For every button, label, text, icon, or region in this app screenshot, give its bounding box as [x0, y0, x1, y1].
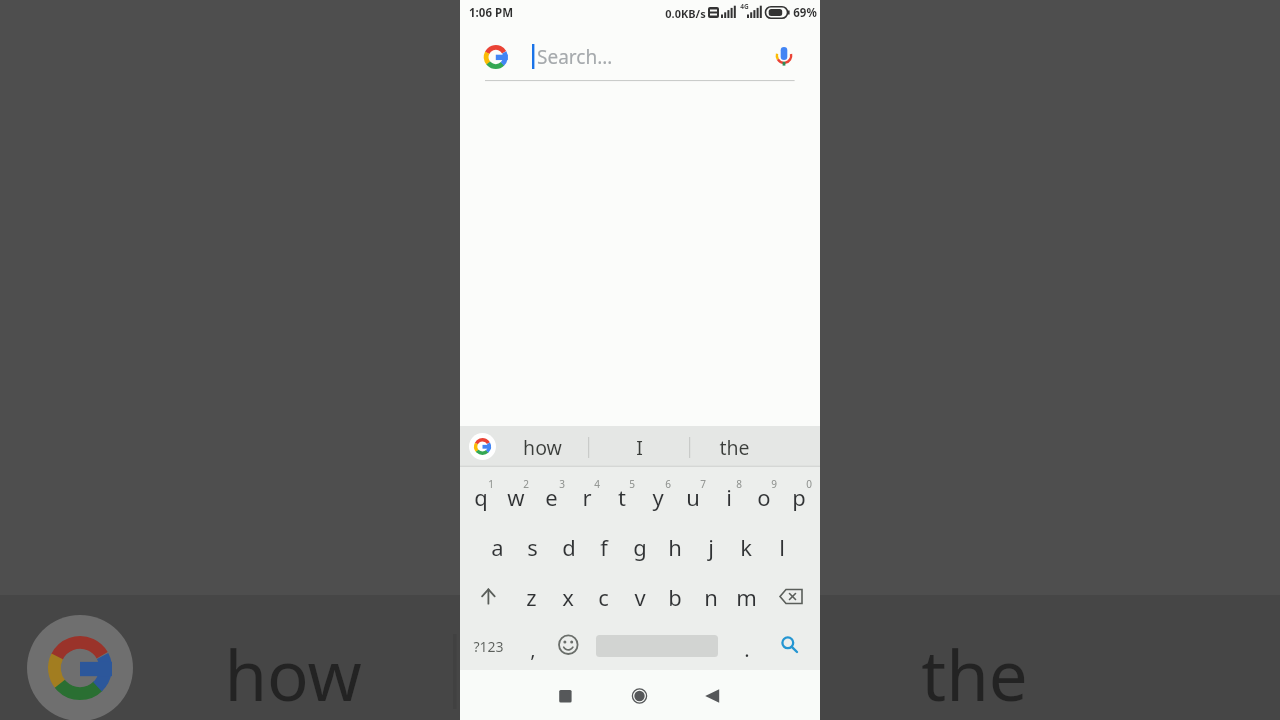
staticText: h	[668, 532, 682, 562]
staticText: how	[523, 434, 562, 461]
staticText: r	[582, 482, 592, 512]
staticText: n	[704, 582, 718, 612]
button[interactable]: r	[569, 473, 604, 521]
staticText: 7	[700, 477, 706, 491]
button[interactable]	[619, 676, 659, 716]
staticText: p	[792, 482, 806, 512]
staticText: ,	[530, 636, 536, 663]
button[interactable]: v	[622, 573, 657, 621]
button[interactable]: x	[550, 573, 585, 621]
staticText: a	[491, 532, 504, 562]
staticText: 4G	[740, 2, 749, 10]
button[interactable]: t	[604, 473, 639, 521]
button[interactable]: the	[689, 427, 779, 468]
button[interactable]	[692, 676, 732, 716]
staticText: q	[474, 482, 488, 512]
button[interactable]: i	[711, 473, 746, 521]
button[interactable]: how	[497, 427, 587, 468]
staticText: 1:06 PM	[469, 5, 513, 21]
staticText: the	[719, 434, 750, 461]
button[interactable]: b	[657, 573, 692, 621]
button[interactable]: w	[498, 473, 533, 521]
staticText: 0	[806, 477, 812, 491]
button[interactable]: a	[480, 523, 515, 571]
staticText: 3	[559, 477, 565, 491]
staticText: f	[600, 532, 608, 562]
staticText: c	[598, 582, 609, 612]
button[interactable]: y	[640, 473, 675, 521]
staticText: Search…	[537, 44, 613, 70]
button[interactable]: l	[764, 523, 799, 571]
staticText: t	[618, 482, 626, 512]
staticText: u	[686, 482, 700, 512]
button[interactable]: f	[586, 523, 621, 571]
button[interactable]: u	[675, 473, 710, 521]
staticText: k	[740, 532, 752, 562]
button[interactable]: o	[746, 473, 781, 521]
staticText: 9	[771, 477, 777, 491]
staticText: x	[562, 582, 574, 612]
staticText: 2	[523, 477, 529, 491]
button[interactable]	[468, 572, 508, 620]
button[interactable]: I	[594, 427, 684, 468]
staticText: o	[757, 482, 771, 512]
button[interactable]: m	[729, 573, 764, 621]
staticText: i	[726, 482, 732, 512]
staticText: ?123	[473, 637, 504, 656]
staticText: how	[224, 627, 362, 720]
staticText: l	[779, 532, 785, 562]
button[interactable]: e	[534, 473, 569, 521]
button[interactable]	[770, 624, 810, 668]
button[interactable]: g	[622, 523, 657, 571]
button[interactable]: .	[732, 627, 762, 671]
button[interactable]: ,	[518, 627, 548, 671]
button[interactable]	[470, 30, 810, 82]
staticText: .	[744, 636, 750, 663]
staticText: 5	[629, 477, 635, 491]
staticText: d	[562, 532, 576, 562]
staticText: 8	[736, 477, 742, 491]
button[interactable]: n	[693, 573, 728, 621]
staticText: m	[736, 582, 757, 612]
staticText: I	[636, 434, 643, 461]
staticText: 1	[488, 477, 494, 491]
staticText: z	[526, 582, 537, 612]
button[interactable]: c	[586, 573, 621, 621]
button[interactable]: q	[463, 473, 498, 521]
button[interactable]: p	[781, 473, 816, 521]
button[interactable]: ?123	[466, 624, 510, 668]
button[interactable]	[771, 572, 811, 620]
button[interactable]: h	[657, 523, 692, 571]
staticText: g	[633, 532, 647, 562]
staticText: s	[527, 532, 538, 562]
staticText: e	[545, 482, 558, 512]
staticText: j	[708, 532, 714, 562]
button[interactable]: d	[551, 523, 586, 571]
button[interactable]	[558, 624, 578, 668]
staticText: 6	[665, 477, 671, 491]
button[interactable]: s	[515, 523, 550, 571]
staticText: 4	[594, 477, 600, 491]
staticText: y	[652, 482, 664, 512]
button[interactable]: k	[728, 523, 763, 571]
staticText: the	[921, 627, 1028, 720]
staticText: 69%	[793, 5, 817, 21]
button[interactable]: j	[693, 523, 728, 571]
staticText: v	[634, 582, 646, 612]
staticText: 0.0KB/s	[665, 6, 706, 21]
button[interactable]: z	[514, 573, 549, 621]
button[interactable]	[545, 676, 585, 716]
staticText: b	[668, 582, 682, 612]
staticText: w	[507, 482, 525, 512]
